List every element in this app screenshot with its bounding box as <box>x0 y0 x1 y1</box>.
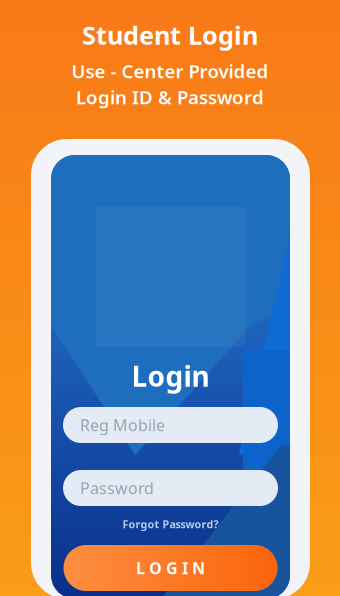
button[interactable]: Forgot Password? <box>120 516 220 532</box>
staticText: Password <box>80 477 154 499</box>
staticText: Forgot Password? <box>122 517 218 531</box>
button[interactable]: Password <box>63 470 278 506</box>
staticText: Login <box>131 357 209 395</box>
button[interactable]: Reg Mobile <box>63 407 278 443</box>
button[interactable]: L O G I N <box>63 545 277 591</box>
staticText: Login ID & Password <box>76 85 264 109</box>
staticText: Reg Mobile <box>80 414 165 436</box>
staticText: Student Login <box>82 18 258 52</box>
staticText: Use - Center Provided <box>71 59 268 83</box>
staticText: L O G I N <box>136 557 205 579</box>
